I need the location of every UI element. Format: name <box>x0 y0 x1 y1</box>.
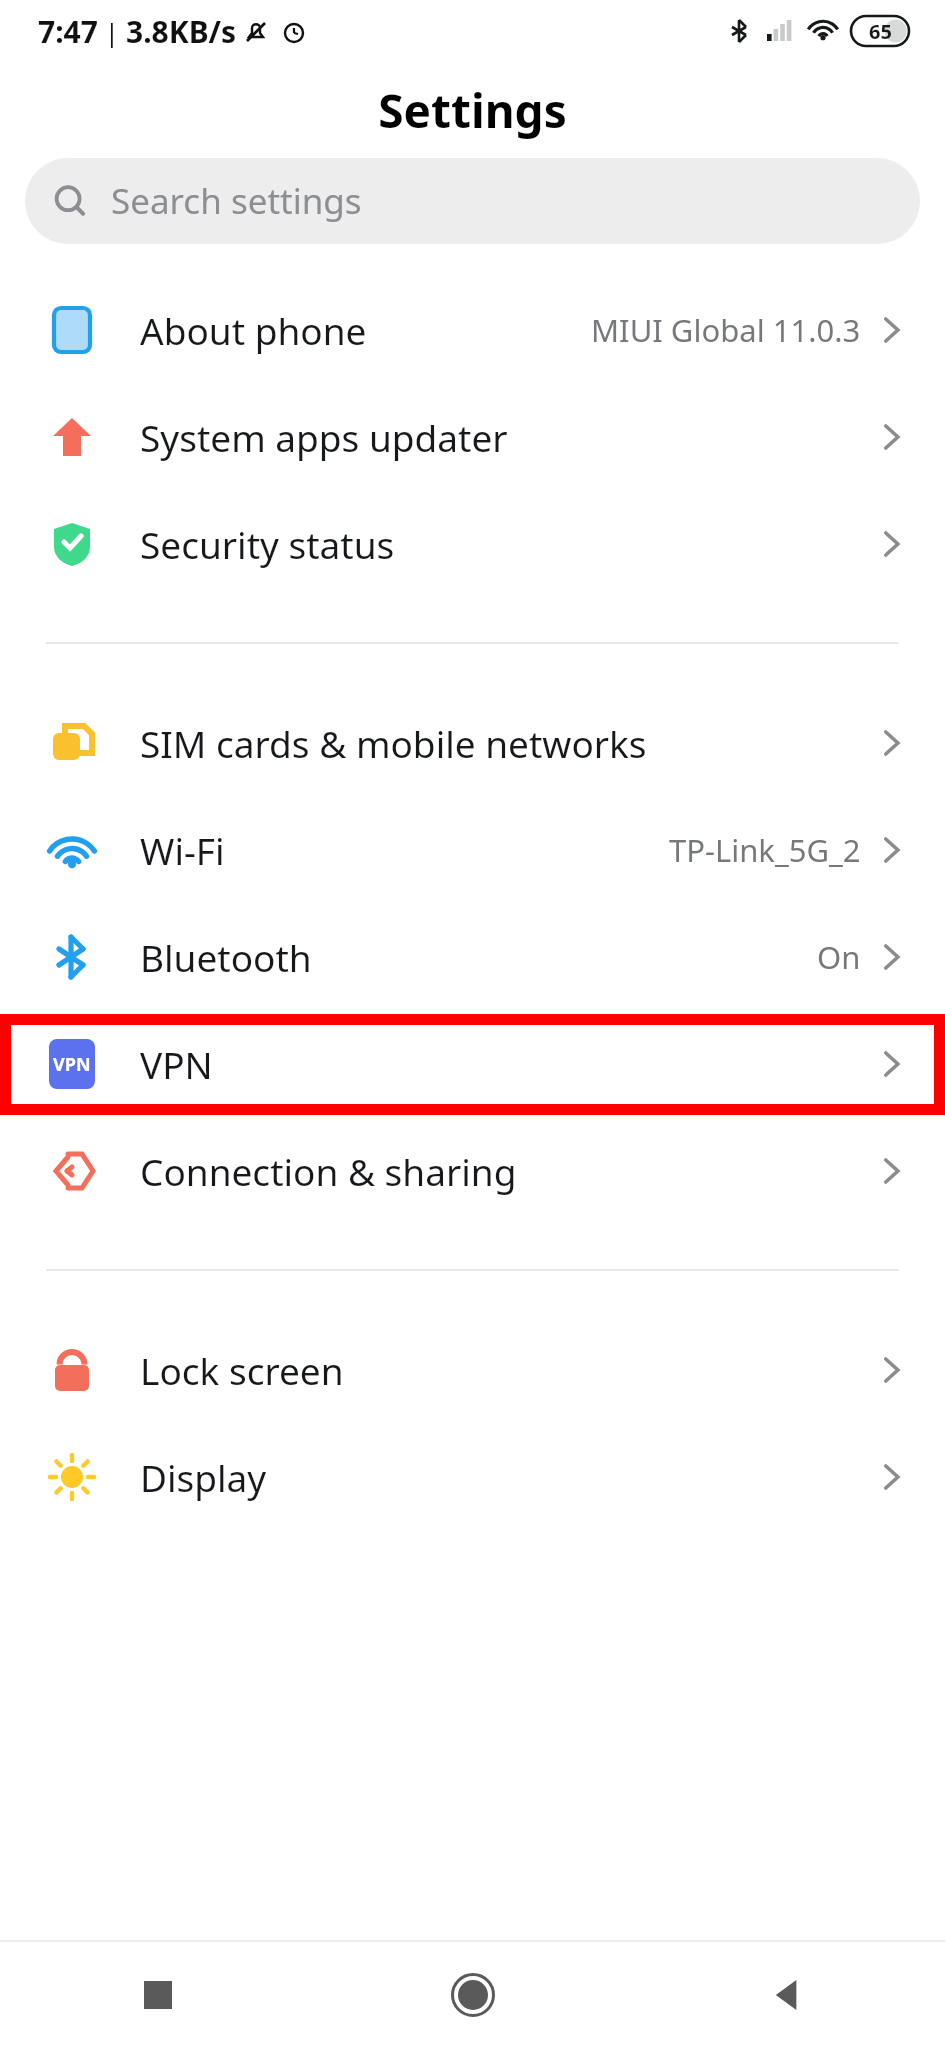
button[interactable]: Security status <box>0 490 945 597</box>
staticText: 3.8KB/s <box>126 11 237 52</box>
button[interactable]: Home <box>315 1942 630 2048</box>
staticText: Bluetooth <box>140 932 312 982</box>
staticText: On <box>817 936 861 978</box>
staticText: Lock screen <box>140 1345 344 1395</box>
button[interactable]: VPN <box>0 1010 945 1117</box>
staticText: SIM cards & mobile networks <box>140 718 647 768</box>
staticText: VPN <box>140 1039 213 1089</box>
button[interactable]: Wi-Fi <box>0 796 945 903</box>
staticText: Wi-Fi <box>140 825 225 875</box>
staticText: Display <box>140 1452 267 1502</box>
button[interactable]: Bluetooth <box>0 903 945 1010</box>
staticText: | <box>98 14 126 49</box>
button[interactable]: Display <box>0 1423 945 1530</box>
staticText: Settings <box>378 79 567 142</box>
staticText: Security status <box>140 519 395 569</box>
button[interactable]: System apps updater <box>0 383 945 490</box>
staticText: About phone <box>140 305 367 355</box>
button[interactable]: Back <box>630 1942 945 2048</box>
button[interactable]: Recent apps <box>0 1942 315 2048</box>
button[interactable]: About phone <box>0 276 945 383</box>
staticText: System apps updater <box>140 412 508 462</box>
button[interactable]: Lock screen <box>0 1316 945 1423</box>
staticText: 7:47 <box>38 11 98 52</box>
button[interactable]: Connection & sharing <box>0 1117 945 1224</box>
staticText: VPN <box>53 1052 91 1077</box>
button[interactable]: Search settings <box>25 158 920 244</box>
staticText: TP-Link_5G_2 <box>669 829 861 871</box>
staticText: Connection & sharing <box>140 1146 517 1196</box>
staticText: Search settings <box>111 177 362 225</box>
staticText: 65 <box>869 18 892 45</box>
button[interactable]: SIM cards & mobile networks <box>0 689 945 796</box>
staticText: MIUI Global 11.0.3 <box>591 309 861 351</box>
